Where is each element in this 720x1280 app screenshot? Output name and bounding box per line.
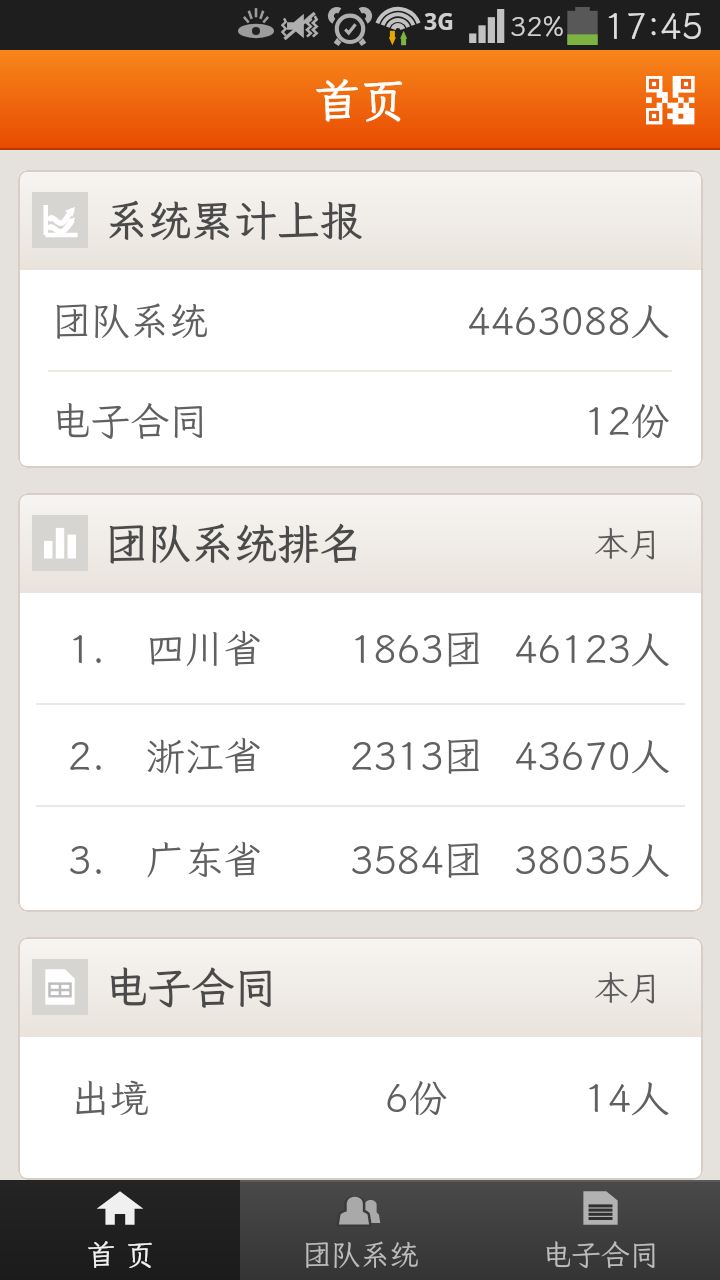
staticText: 团队系统: [52, 295, 209, 346]
staticText: 电子合同: [105, 959, 277, 1016]
button[interactable]: 电子合同: [480, 1180, 720, 1280]
staticText: 2.: [68, 730, 106, 781]
staticText: 14人: [584, 1072, 670, 1123]
button[interactable]: 电子合同: [18, 372, 703, 468]
staticText: 本月: [594, 965, 662, 1010]
staticText: 1863团: [350, 623, 483, 674]
button[interactable]: 首 页: [0, 1180, 240, 1280]
staticText: 38035人: [514, 834, 671, 885]
staticText: 1.: [68, 623, 106, 674]
staticText: 4463088人: [467, 295, 670, 346]
button[interactable]: 团队系统: [240, 1180, 480, 1280]
staticText: 46123人: [514, 623, 671, 674]
button[interactable]: Scan QR code: [620, 50, 720, 150]
staticText: 四川省: [146, 623, 264, 674]
staticText: 6份: [385, 1072, 448, 1123]
staticText: 本月: [594, 521, 662, 566]
staticText: 3.: [68, 834, 106, 885]
staticText: 17:45: [604, 2, 704, 49]
staticText: 32%: [510, 8, 564, 44]
button[interactable]: 团队系统: [18, 270, 703, 372]
button[interactable]: 出境: [18, 1037, 703, 1157]
staticText: 首 页: [86, 1235, 155, 1273]
staticText: 出境: [71, 1072, 150, 1123]
staticText: 3G: [424, 5, 454, 36]
staticText: 系统累计上报: [105, 192, 363, 249]
staticText: 3584团: [350, 834, 483, 885]
staticText: 2313团: [350, 730, 483, 781]
staticText: 浙江省: [146, 730, 264, 781]
staticText: 广东省: [146, 834, 264, 885]
button[interactable]: 3.: [18, 807, 703, 912]
staticText: 43670人: [514, 730, 671, 781]
staticText: 电子合同: [52, 395, 209, 446]
staticText: 团队系统: [302, 1235, 419, 1273]
staticText: 团队系统排名: [105, 515, 363, 572]
staticText: 电子合同: [542, 1235, 659, 1273]
button[interactable]: 1.: [18, 593, 703, 705]
staticText: 首页: [314, 70, 406, 131]
staticText: 12份: [584, 395, 670, 446]
button[interactable]: 2.: [18, 705, 703, 807]
